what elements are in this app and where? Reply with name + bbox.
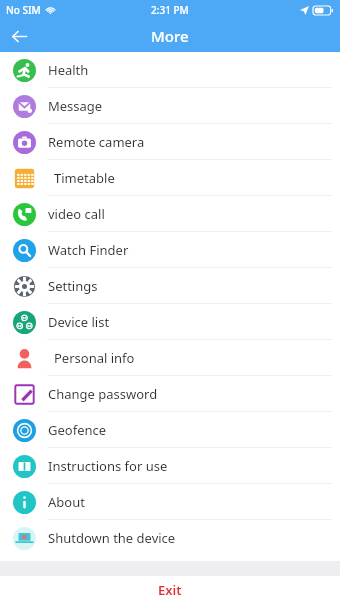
staticText: More xyxy=(151,26,189,46)
staticText: Health xyxy=(48,61,89,79)
staticText: Message xyxy=(48,97,103,115)
button[interactable]: Geofence xyxy=(0,412,340,448)
staticText: Watch Finder xyxy=(48,241,129,259)
staticText: Remote camera xyxy=(48,133,145,151)
button[interactable]: Timetable xyxy=(0,160,340,196)
button[interactable]: Watch Finder xyxy=(0,232,340,268)
button[interactable]: Back xyxy=(0,20,38,52)
staticText: Geofence xyxy=(48,421,107,439)
staticText: Change password xyxy=(48,385,158,403)
staticText: Device list xyxy=(48,313,110,331)
button[interactable]: Remote camera xyxy=(0,124,340,160)
staticText: 2:31 PM xyxy=(151,3,189,17)
staticText: Shutdown the device xyxy=(48,529,176,547)
button[interactable]: Health xyxy=(0,52,340,88)
button[interactable]: Shutdown the device xyxy=(0,520,340,556)
staticText: video call xyxy=(48,205,105,223)
button[interactable]: Settings xyxy=(0,268,340,304)
button[interactable]: Message xyxy=(0,88,340,124)
staticText: Timetable xyxy=(54,169,115,187)
staticText: Instructions for use xyxy=(48,457,168,475)
staticText: No SIM xyxy=(6,3,41,17)
staticText: About xyxy=(48,493,85,511)
button[interactable]: Instructions for use xyxy=(0,448,340,484)
button[interactable]: About xyxy=(0,484,340,520)
button[interactable]: Change password xyxy=(0,376,340,412)
button[interactable]: video call xyxy=(0,196,340,232)
staticText: Personal info xyxy=(54,349,135,367)
button[interactable]: Device list xyxy=(0,304,340,340)
button[interactable]: Personal info xyxy=(0,340,340,376)
button[interactable]: Exit xyxy=(0,576,340,604)
staticText: Settings xyxy=(48,277,98,295)
staticText: Exit xyxy=(158,581,182,599)
